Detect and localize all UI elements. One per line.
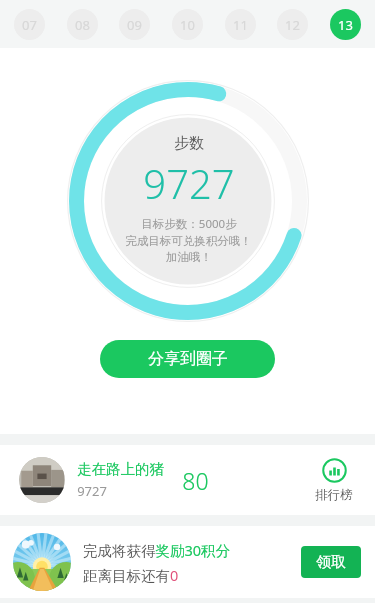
button[interactable]: 走在路上的猪 xyxy=(0,445,375,515)
button[interactable]: 领取 xyxy=(301,546,361,578)
button[interactable]: 11 xyxy=(225,9,256,40)
staticText: 走在路上的猪 xyxy=(77,460,164,478)
staticText: 领取 xyxy=(316,553,346,572)
staticText: 10 xyxy=(180,16,195,34)
staticText: 80 xyxy=(182,465,209,496)
staticText: 12 xyxy=(285,16,300,34)
staticText: 08 xyxy=(75,16,90,34)
staticText: 07 xyxy=(22,16,37,34)
button[interactable]: 分享到圈子 xyxy=(100,340,275,378)
button[interactable]: 07 xyxy=(14,9,45,40)
staticText: 目标步数：5000步 xyxy=(141,216,237,232)
button[interactable]: 13 xyxy=(330,9,361,40)
staticText: 排行榜 xyxy=(315,487,353,503)
staticText: 步数 xyxy=(174,134,204,153)
staticText: 9727 xyxy=(77,482,107,500)
staticText: 完成目标可兑换积分哦！ xyxy=(125,234,252,248)
staticText: 09 xyxy=(127,16,142,34)
staticText: 分享到圈子 xyxy=(148,349,228,369)
button[interactable]: 12 xyxy=(277,9,308,40)
button[interactable]: 09 xyxy=(119,9,150,40)
button[interactable]: 10 xyxy=(172,9,203,40)
button[interactable]: 排行榜 xyxy=(309,456,359,505)
staticText: 距离目标还有0 xyxy=(83,565,179,585)
staticText: 13 xyxy=(338,16,353,34)
button[interactable]: 08 xyxy=(67,9,98,40)
staticText: 9727 xyxy=(143,156,235,210)
staticText: 加油哦！ xyxy=(166,250,212,264)
staticText: 11 xyxy=(233,16,248,34)
staticText: 完成将获得奖励30积分 xyxy=(83,540,231,560)
